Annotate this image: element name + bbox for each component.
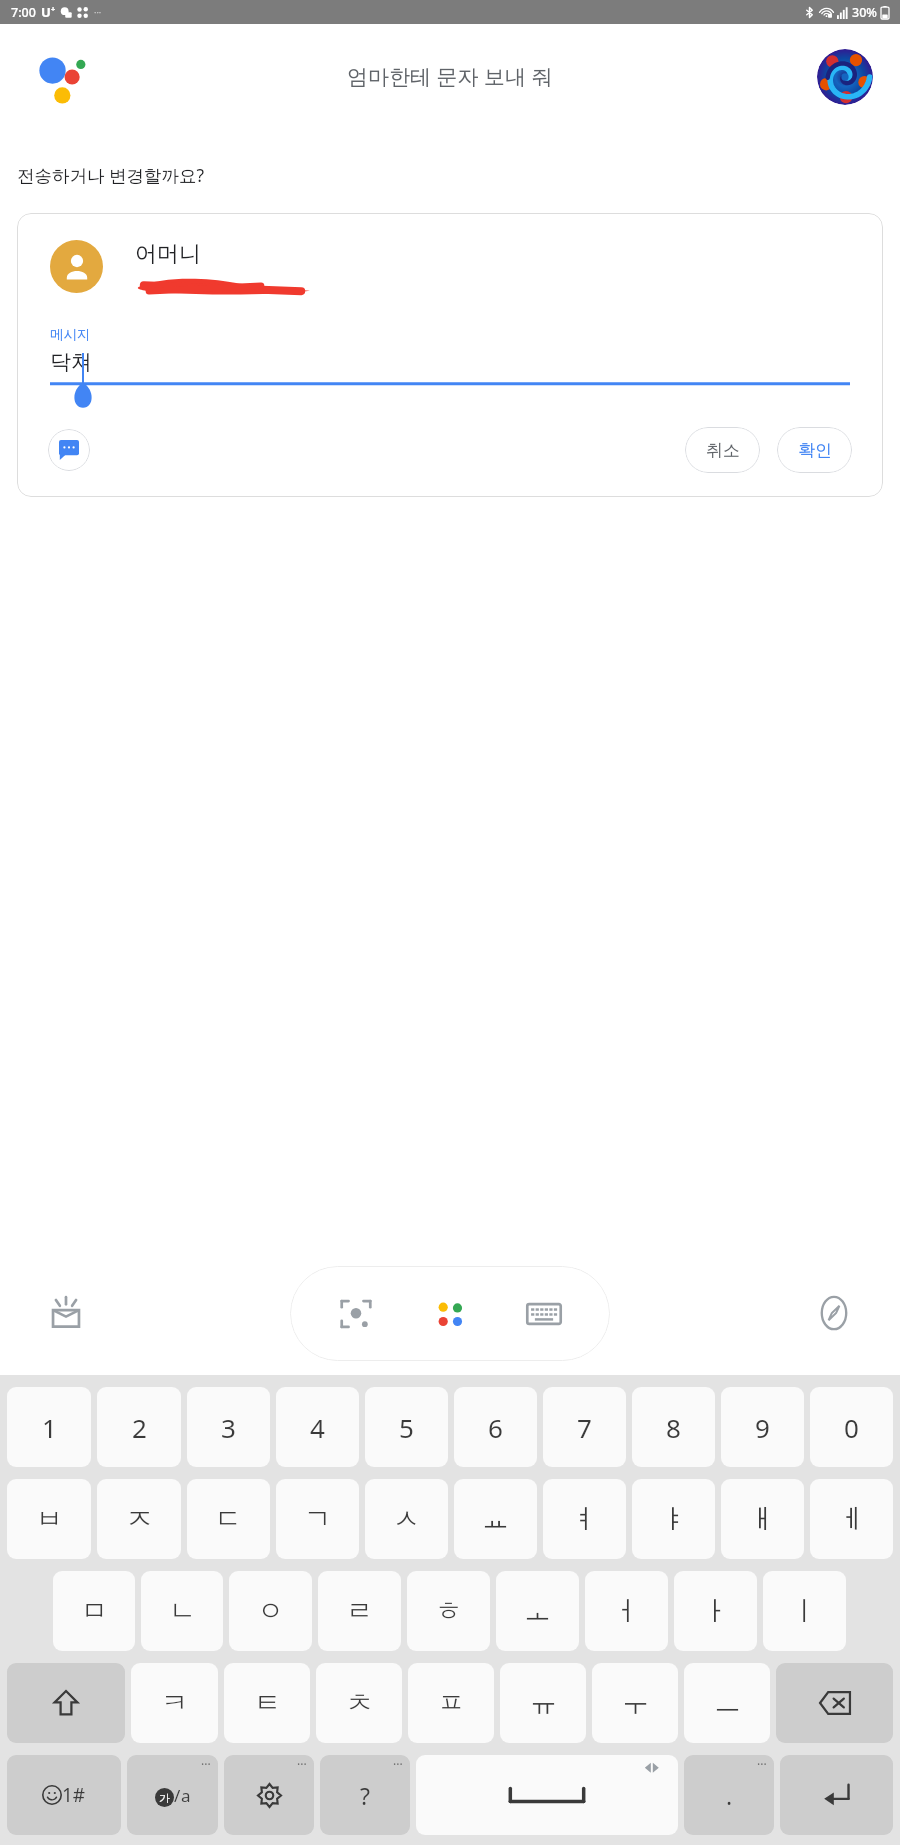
- button[interactable]: ㄴ: [141, 1571, 223, 1651]
- button[interactable]: 0: [810, 1387, 893, 1467]
- staticText: ···: [297, 1756, 307, 1772]
- staticText: 전송하거나 변경할까요?: [17, 163, 205, 187]
- button[interactable]: ㅋ: [131, 1663, 218, 1743]
- button[interactable]: ㅜ: [592, 1663, 678, 1743]
- button[interactable]: ㅓ: [585, 1571, 668, 1651]
- staticText: ㄷ: [215, 1502, 242, 1536]
- button[interactable]: ㅎ: [407, 1571, 490, 1651]
- staticText: 닥쳐: [50, 349, 92, 375]
- button[interactable]: Profile: [817, 49, 873, 105]
- staticText: ㅍ: [438, 1686, 465, 1720]
- button[interactable]: 9: [721, 1387, 804, 1467]
- button[interactable]: 가: [127, 1755, 218, 1835]
- staticText: ㅏ: [702, 1594, 729, 1628]
- staticText: ㅁ: [81, 1594, 108, 1628]
- button[interactable]: .: [684, 1755, 774, 1835]
- staticText: 어머니: [135, 240, 201, 268]
- staticText: a: [181, 1784, 191, 1807]
- staticText: ㅛ: [482, 1502, 509, 1536]
- button[interactable]: Assistant microphone: [422, 1286, 478, 1342]
- staticText: ㅠ: [530, 1686, 557, 1720]
- staticText: ㄴ: [169, 1594, 196, 1628]
- staticText: 6: [488, 1410, 503, 1445]
- button[interactable]: Explore: [810, 1289, 858, 1337]
- staticText: ?: [360, 1780, 370, 1811]
- staticText: ㅈ: [126, 1502, 153, 1536]
- button[interactable]: ㅍ: [408, 1663, 494, 1743]
- button[interactable]: Inbox: [42, 1289, 90, 1337]
- button[interactable]: ㅠ: [500, 1663, 586, 1743]
- button[interactable]: ㅔ: [810, 1479, 893, 1559]
- staticText: ㅕ: [571, 1502, 598, 1536]
- staticText: ㅣ: [791, 1594, 818, 1628]
- button[interactable]: Google Assistant: [36, 49, 92, 105]
- staticText: ···: [94, 6, 102, 18]
- button[interactable]: Backspace: [776, 1663, 893, 1743]
- button[interactable]: ㄷ: [187, 1479, 270, 1559]
- button[interactable]: ㅗ: [496, 1571, 579, 1651]
- button[interactable]: 확인: [777, 427, 852, 473]
- staticText: ㅅ: [393, 1502, 420, 1536]
- button[interactable]: 2: [97, 1387, 181, 1467]
- staticText: 7:00: [11, 4, 36, 21]
- staticText: .: [726, 1780, 733, 1811]
- staticText: U⁺: [41, 3, 56, 21]
- staticText: ㅓ: [613, 1594, 640, 1628]
- staticText: ···: [393, 1756, 403, 1772]
- button[interactable]: Shift: [7, 1663, 125, 1743]
- button[interactable]: ···: [224, 1755, 314, 1835]
- staticText: 1: [42, 1410, 57, 1445]
- staticText: 4: [310, 1410, 325, 1445]
- button[interactable]: ㅏ: [674, 1571, 757, 1651]
- button[interactable]: ㅂ: [7, 1479, 91, 1559]
- button[interactable]: Google Lens: [328, 1286, 384, 1342]
- button[interactable]: ㅕ: [543, 1479, 626, 1559]
- button[interactable]: ㅡ: [684, 1663, 770, 1743]
- staticText: ㄹ: [346, 1594, 373, 1628]
- button[interactable]: 6: [454, 1387, 537, 1467]
- button[interactable]: 3: [187, 1387, 270, 1467]
- staticText: ㅗ: [524, 1594, 551, 1628]
- button[interactable]: ㅣ: [763, 1571, 846, 1651]
- staticText: 1#: [62, 1782, 86, 1808]
- button[interactable]: ㄹ: [318, 1571, 401, 1651]
- staticText: ···: [757, 1756, 767, 1772]
- button[interactable]: 1#: [7, 1755, 121, 1835]
- button[interactable]: 1: [7, 1387, 91, 1467]
- button[interactable]: ㅈ: [97, 1479, 181, 1559]
- button[interactable]: 취소: [685, 427, 760, 473]
- staticText: ㅊ: [346, 1686, 373, 1720]
- staticText: 5: [399, 1410, 414, 1445]
- staticText: 엄마한테 문자 보내 줘: [347, 62, 553, 91]
- button[interactable]: Enter: [780, 1755, 893, 1835]
- staticText: 가: [159, 1791, 170, 1805]
- button[interactable]: 7: [543, 1387, 626, 1467]
- button[interactable]: 8: [632, 1387, 715, 1467]
- button[interactable]: ㅅ: [365, 1479, 448, 1559]
- button[interactable]: ㅐ: [721, 1479, 804, 1559]
- staticText: 8: [666, 1410, 681, 1445]
- staticText: 30%: [852, 4, 877, 21]
- button[interactable]: ㄱ: [276, 1479, 359, 1559]
- button[interactable]: Message options: [48, 429, 90, 471]
- staticText: /: [174, 1784, 181, 1807]
- button[interactable]: ㅛ: [454, 1479, 537, 1559]
- button[interactable]: Space: [416, 1755, 678, 1835]
- button[interactable]: 5: [365, 1387, 448, 1467]
- button[interactable]: 4: [276, 1387, 359, 1467]
- button[interactable]: ㅊ: [316, 1663, 402, 1743]
- staticText: ㄱ: [304, 1502, 331, 1536]
- button[interactable]: ㅌ: [224, 1663, 310, 1743]
- button[interactable]: ㅁ: [53, 1571, 135, 1651]
- staticText: ㅜ: [622, 1686, 649, 1720]
- button[interactable]: ㅑ: [632, 1479, 715, 1559]
- staticText: 7: [577, 1410, 592, 1445]
- button[interactable]: ?: [320, 1755, 410, 1835]
- staticText: 2: [132, 1410, 147, 1445]
- button[interactable]: ㅇ: [229, 1571, 312, 1651]
- staticText: ㅌ: [254, 1686, 281, 1720]
- button[interactable]: Keyboard: [516, 1286, 572, 1342]
- staticText: ㅑ: [660, 1502, 687, 1536]
- staticText: 확인: [798, 440, 832, 461]
- staticText: ㅇ: [257, 1594, 284, 1628]
